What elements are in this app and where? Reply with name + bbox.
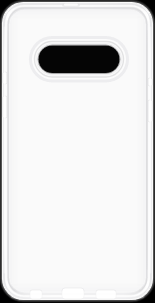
button[interactable]: Clear phone case product photo xyxy=(0,0,155,303)
